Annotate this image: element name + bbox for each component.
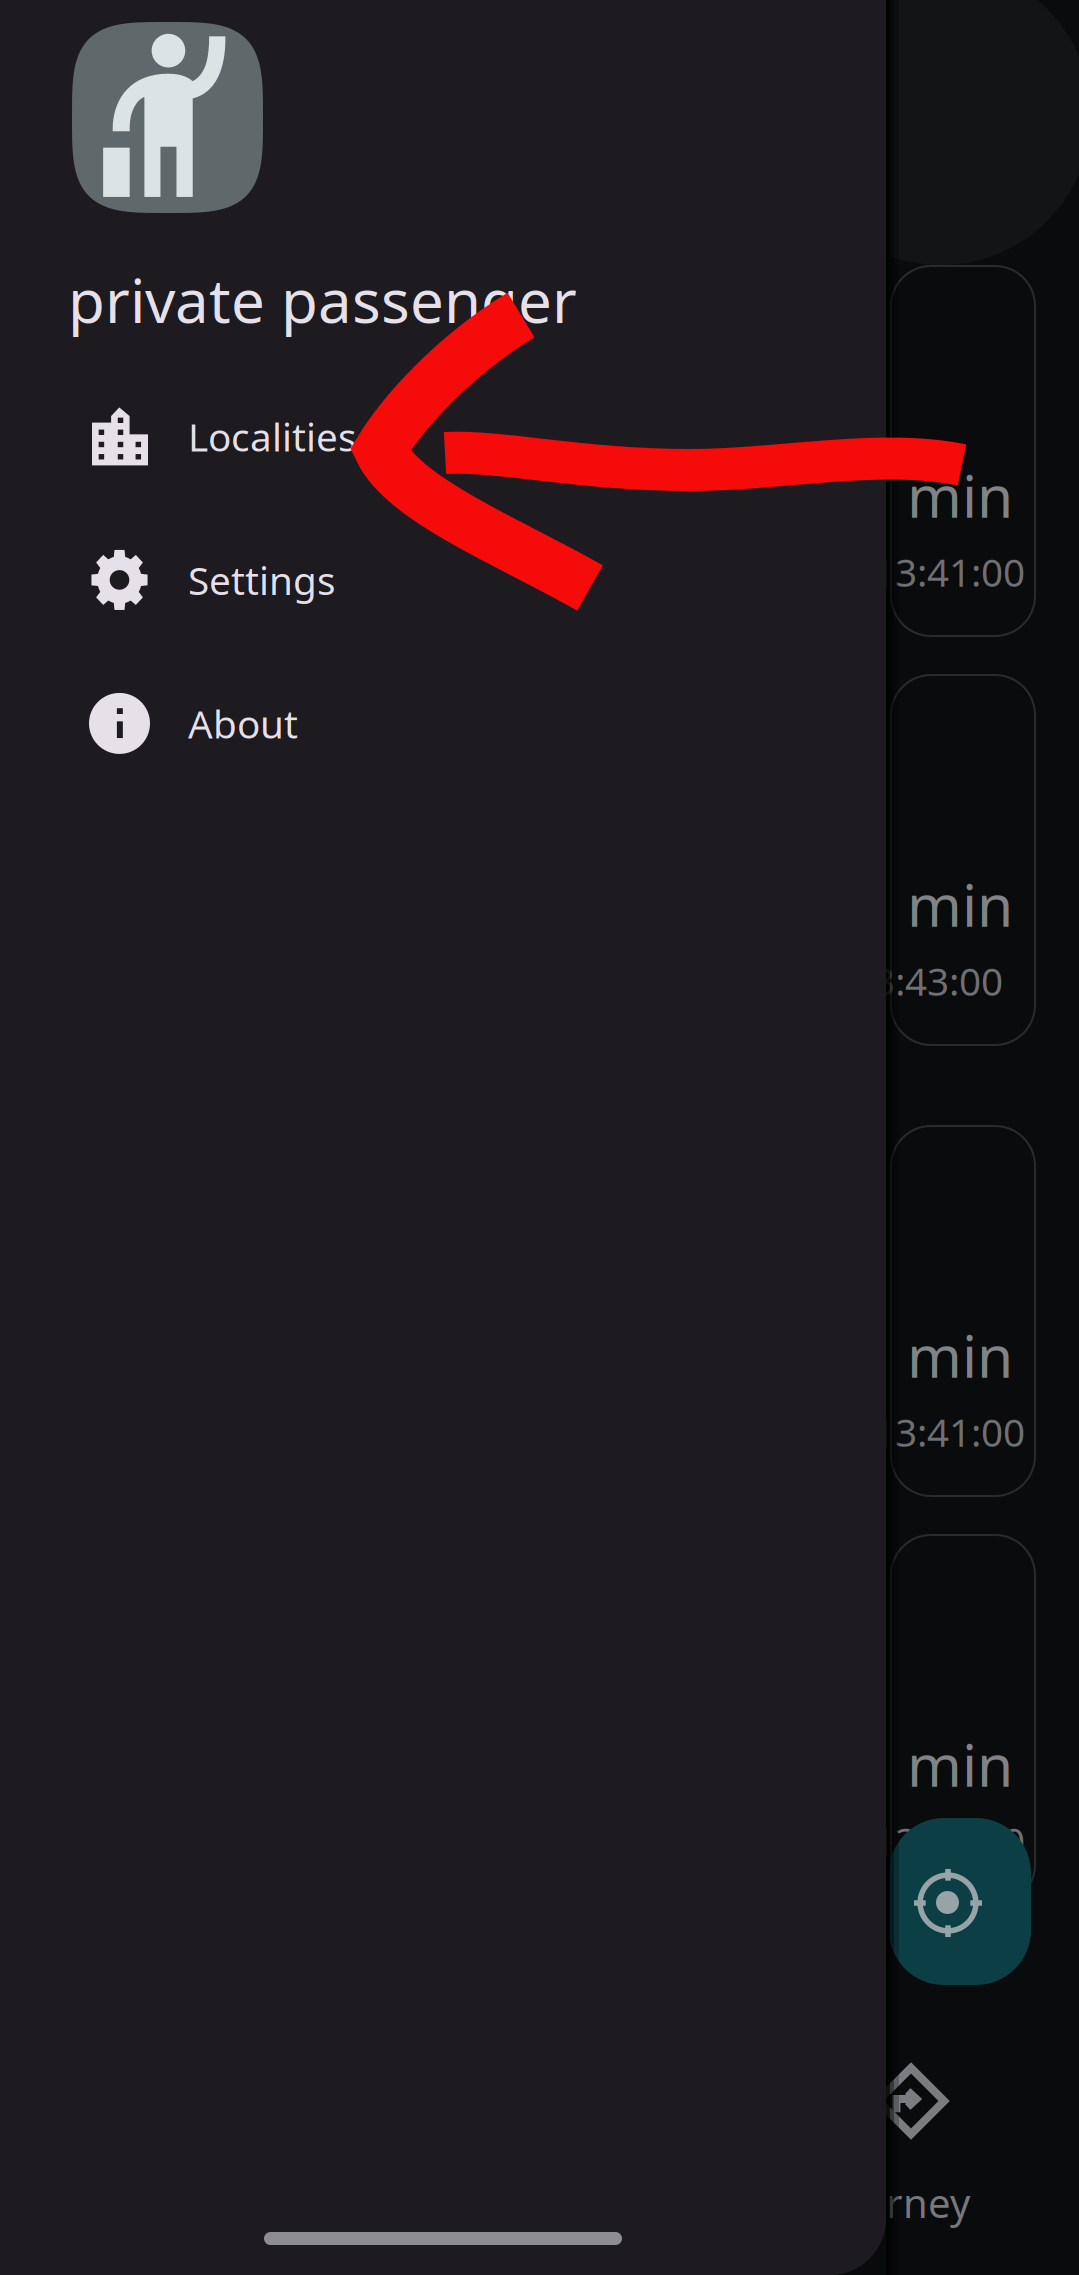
button[interactable]: About xyxy=(0,652,886,795)
staticText: 13:39:00 xyxy=(873,1815,1025,1866)
staticText: Localities xyxy=(188,411,357,462)
staticText: private passenger xyxy=(68,260,577,340)
staticText: min xyxy=(907,1725,1013,1803)
staticText: 3:43:00 xyxy=(873,955,1003,1006)
staticText: min xyxy=(907,865,1013,943)
staticText: 13:41:00 xyxy=(873,546,1025,597)
staticText: rney xyxy=(886,2176,970,2229)
staticText: min xyxy=(907,1316,1013,1394)
staticText: 13:41:00 xyxy=(873,1406,1025,1457)
staticText: About xyxy=(188,698,298,749)
button[interactable]: Settings xyxy=(0,508,886,652)
staticText: Settings xyxy=(188,554,336,606)
staticText: min xyxy=(907,456,1013,534)
button[interactable]: Localities xyxy=(0,365,886,508)
